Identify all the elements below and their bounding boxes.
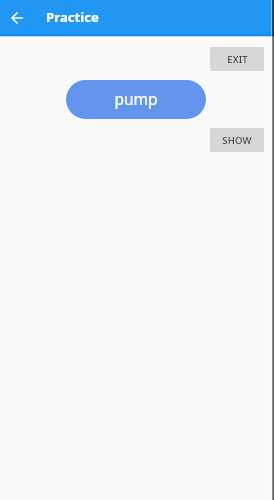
- staticText: Practice: [46, 8, 99, 26]
- staticText: EXIT: [227, 53, 248, 66]
- button[interactable]: SHOW: [210, 128, 264, 152]
- button[interactable]: Navigate up: [2, 3, 32, 33]
- staticText: pump: [114, 88, 158, 109]
- button[interactable]: EXIT: [210, 47, 264, 71]
- staticText: SHOW: [222, 134, 252, 147]
- button[interactable]: pump: [66, 80, 206, 119]
